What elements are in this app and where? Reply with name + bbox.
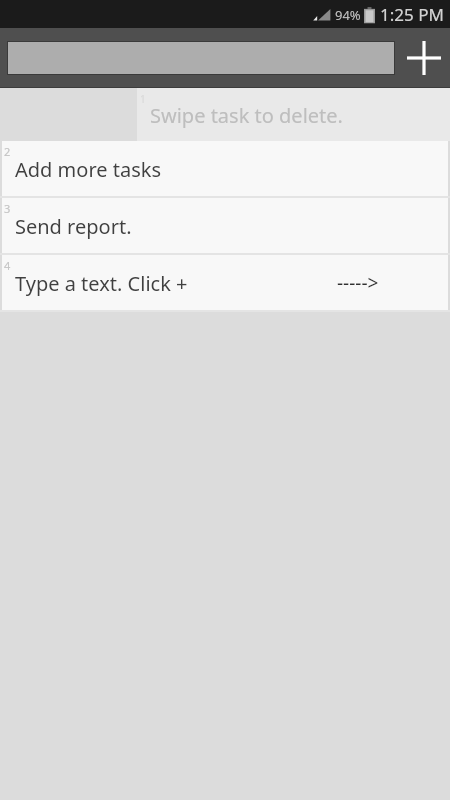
staticText: 2: [4, 144, 11, 159]
staticText: 3: [4, 201, 11, 216]
staticText: Swipe task to delete.: [150, 102, 343, 129]
staticText: 4: [4, 258, 11, 273]
staticText: Send report.: [15, 213, 132, 240]
staticText: ----->: [337, 270, 379, 296]
staticText: Add more tasks: [15, 156, 161, 183]
button[interactable]: 1: [137, 88, 450, 141]
staticText: 94%: [335, 6, 361, 24]
button[interactable]: Add task: [398, 28, 450, 88]
button[interactable]: 3: [2, 198, 448, 253]
button[interactable]: 4: [2, 255, 448, 310]
staticText: 1: [140, 92, 146, 106]
button[interactable]: 2: [2, 141, 448, 196]
staticText: Type a text. Click +: [15, 270, 188, 297]
staticText: 1:25 PM: [380, 3, 444, 26]
